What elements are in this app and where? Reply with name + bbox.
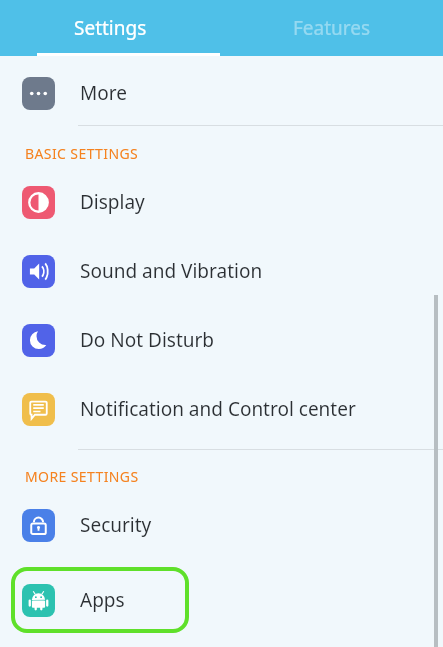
staticText: MORE SETTINGS <box>25 467 139 486</box>
button[interactable]: Settings <box>0 0 221 56</box>
button[interactable]: More <box>0 70 443 116</box>
staticText: Display <box>80 189 145 215</box>
button[interactable]: Sound and Vibration <box>0 246 443 296</box>
button[interactable]: Apps <box>0 565 443 635</box>
staticText: Do Not Disturb <box>80 327 215 353</box>
button[interactable]: Display <box>0 177 443 227</box>
staticText: BASIC SETTINGS <box>25 144 139 163</box>
staticText: More <box>80 80 127 106</box>
staticText: Apps <box>80 587 125 613</box>
button[interactable]: Notification and Control center <box>0 384 443 434</box>
button[interactable]: Security <box>0 500 443 550</box>
staticText: Notification and Control center <box>80 396 356 422</box>
button[interactable]: Do Not Disturb <box>0 315 443 365</box>
staticText: Features <box>293 15 371 41</box>
staticText: Security <box>80 512 152 538</box>
staticText: Settings <box>74 15 147 41</box>
button[interactable]: Features <box>221 0 443 56</box>
staticText: Sound and Vibration <box>80 258 263 284</box>
